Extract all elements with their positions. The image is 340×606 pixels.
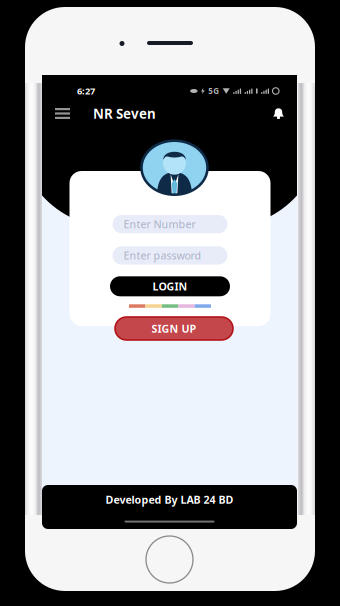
button[interactable]: Enter Number bbox=[112, 215, 227, 233]
button[interactable]: Enter password bbox=[112, 246, 227, 265]
button[interactable]: NR Seven bbox=[77, 105, 156, 122]
button[interactable]: Notifications bbox=[266, 101, 291, 126]
staticText: NR Seven bbox=[93, 105, 156, 122]
staticText: 6:27 bbox=[77, 85, 95, 97]
staticText: Enter Number bbox=[123, 217, 195, 231]
staticText: Enter password bbox=[123, 248, 201, 263]
staticText: LOGIN bbox=[152, 279, 187, 293]
staticText: Developed By LAB 24 BD bbox=[105, 492, 233, 507]
button[interactable]: SIGN UP bbox=[115, 317, 233, 340]
button[interactable]: LOGIN bbox=[110, 276, 230, 296]
staticText: 5G bbox=[208, 86, 219, 96]
button[interactable]: Menu bbox=[48, 101, 77, 126]
staticText: SIGN UP bbox=[151, 321, 196, 336]
